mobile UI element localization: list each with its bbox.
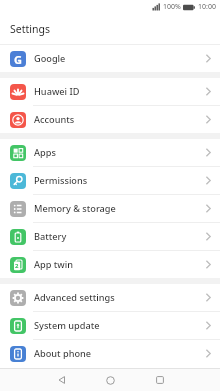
staticText: System update — [34, 319, 100, 332]
staticText: App twin — [34, 258, 73, 271]
button[interactable]: Accounts — [0, 106, 220, 133]
button[interactable]: Apps — [0, 139, 220, 166]
staticText: Battery — [34, 230, 67, 243]
staticText: About phone — [34, 347, 92, 360]
button[interactable]: Permissions — [0, 167, 220, 194]
button[interactable]: System update — [0, 312, 220, 339]
staticText: Permissions — [34, 174, 88, 187]
staticText: Google — [34, 52, 66, 65]
staticText: 10:00 — [198, 2, 216, 12]
staticText: Memory & storage — [34, 202, 116, 215]
button[interactable]: G — [0, 45, 220, 72]
staticText: Advanced settings — [34, 291, 115, 304]
staticText: Apps — [34, 146, 56, 159]
button[interactable]: Advanced settings — [0, 284, 220, 311]
button[interactable] — [86, 369, 135, 391]
button[interactable]: About phone — [0, 340, 220, 367]
button[interactable]: Memory & storage — [0, 195, 220, 222]
staticText: Settings — [10, 22, 50, 36]
button[interactable] — [135, 369, 184, 391]
button[interactable]: Huawei ID — [0, 78, 220, 105]
staticText: G — [14, 52, 22, 67]
staticText: Accounts — [34, 113, 75, 126]
button[interactable] — [37, 369, 86, 391]
button[interactable]: 2 — [0, 251, 220, 278]
button[interactable]: Battery — [0, 223, 220, 250]
staticText: Huawei ID — [34, 85, 80, 98]
staticText: 2 — [15, 262, 19, 270]
staticText: 100% — [163, 2, 181, 12]
